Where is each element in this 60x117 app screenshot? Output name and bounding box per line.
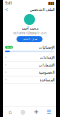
staticText: ✚ bbox=[34, 109, 38, 115]
staticText: الملف الشخصي bbox=[29, 7, 54, 12]
button[interactable]: Tab bbox=[42, 107, 55, 117]
button[interactable]: > bbox=[3, 54, 56, 61]
staticText: تعديل الملف bbox=[22, 38, 37, 41]
button[interactable]: Tab bbox=[29, 107, 42, 117]
staticText: > bbox=[5, 63, 7, 67]
staticText: ⌂ bbox=[8, 109, 11, 115]
button[interactable]: Tab bbox=[3, 107, 16, 117]
button[interactable]: Tab bbox=[16, 107, 29, 117]
staticText: ☰ bbox=[46, 109, 51, 115]
button[interactable]: > bbox=[3, 61, 56, 69]
staticText: > bbox=[5, 71, 7, 74]
staticText: الخصوصية bbox=[38, 70, 54, 75]
staticText: < bbox=[5, 6, 8, 13]
staticText: ▮▮▮ bbox=[48, 1, 54, 5]
button[interactable]: < bbox=[5, 6, 8, 13]
staticText: المساعدة bbox=[39, 78, 54, 82]
button[interactable]: > bbox=[3, 69, 56, 76]
staticText: > bbox=[5, 56, 7, 59]
staticText: 9:41 bbox=[5, 0, 12, 6]
staticText: الإشعارات bbox=[38, 63, 54, 67]
button[interactable]: تعديل الملف bbox=[16, 36, 42, 42]
staticText: نشط bbox=[6, 46, 12, 49]
staticText: الإحصائيات bbox=[38, 45, 54, 50]
staticText: ◎ bbox=[20, 109, 25, 115]
staticText: محمد أحمد bbox=[21, 26, 38, 30]
staticText: الإعدادات bbox=[39, 55, 54, 60]
staticText: > bbox=[5, 78, 7, 82]
button[interactable]: > bbox=[3, 76, 56, 84]
staticText: mohammed@example.com bbox=[13, 31, 46, 35]
